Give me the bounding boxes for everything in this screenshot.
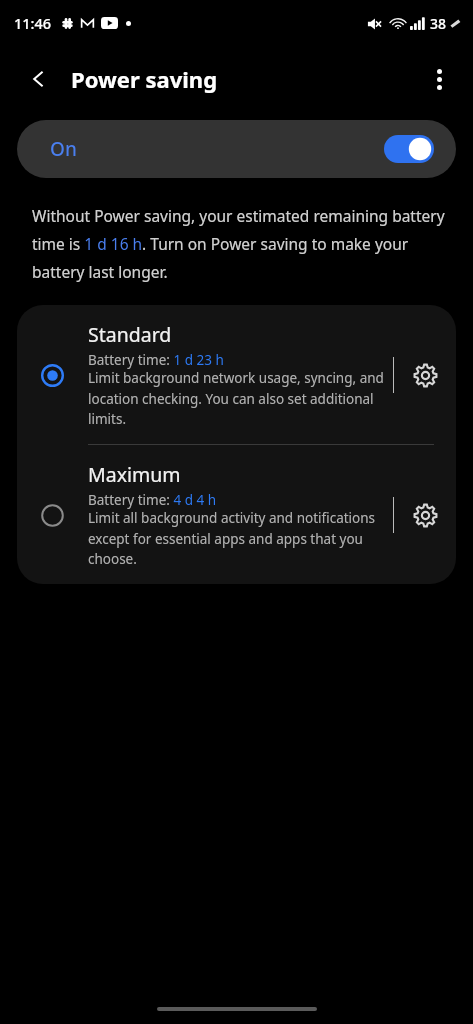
staticText: Maximum — [88, 461, 181, 488]
staticText: Standard — [88, 321, 172, 348]
staticText: Battery time: 1 d 23 h — [88, 351, 224, 369]
staticText: On — [50, 136, 77, 162]
button[interactable]: More options — [421, 61, 457, 97]
staticText: 38 — [430, 14, 447, 33]
staticText: Power saving — [71, 64, 218, 94]
staticText: Limit all background activity and notifi… — [88, 509, 387, 568]
button[interactable]: Standard — [17, 305, 456, 444]
staticText: Without Power saving, your estimated rem… — [32, 205, 447, 283]
button[interactable]: Back — [22, 62, 56, 96]
button[interactable]: On — [17, 120, 456, 178]
staticText: Limit background network usage, syncing,… — [88, 369, 387, 428]
button[interactable]: Maximum — [17, 445, 456, 584]
button[interactable]: Maximum settings — [394, 491, 456, 539]
staticText: 11:46 — [14, 13, 52, 33]
button[interactable]: Standard settings — [394, 351, 456, 399]
staticText: Battery time: 4 d 4 h — [88, 491, 217, 509]
